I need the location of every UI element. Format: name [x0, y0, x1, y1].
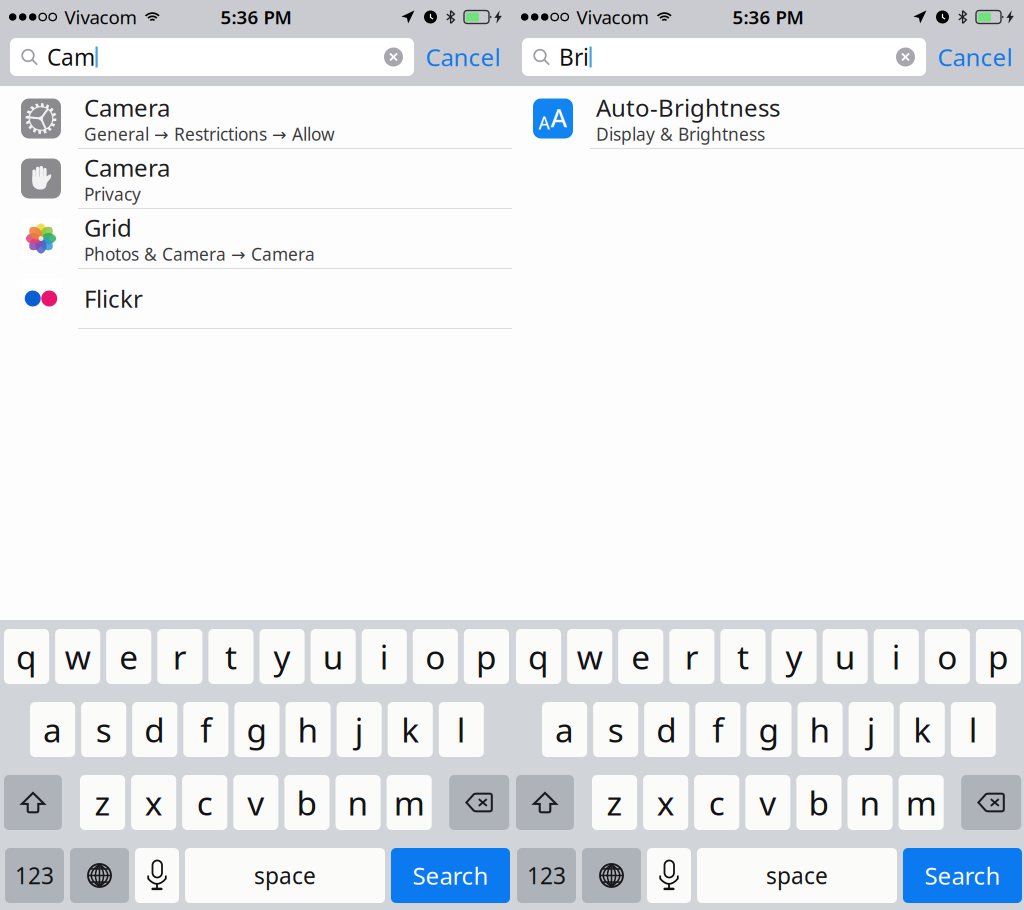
button[interactable]: m — [899, 775, 944, 830]
button[interactable]: Shift — [4, 775, 62, 830]
button[interactable]: b — [284, 775, 329, 830]
staticText: e — [631, 634, 650, 679]
button[interactable]: d — [644, 702, 689, 757]
staticText: j — [867, 707, 876, 752]
button[interactable]: Grid — [0, 209, 512, 269]
button[interactable]: v — [233, 775, 278, 830]
button[interactable]: l — [439, 702, 484, 757]
staticText: 5:36 PM — [220, 5, 291, 29]
staticText: Search — [924, 860, 1000, 891]
button[interactable]: f — [183, 702, 228, 757]
button[interactable]: q — [4, 629, 49, 684]
button[interactable]: Delete — [449, 775, 509, 830]
button[interactable]: j — [337, 702, 382, 757]
button[interactable]: c — [694, 775, 739, 830]
button[interactable]: 123 — [5, 848, 64, 903]
button[interactable]: Next keyboard — [582, 848, 641, 903]
button[interactable]: Shift — [516, 775, 574, 830]
button[interactable]: o — [413, 629, 458, 684]
button[interactable]: k — [388, 702, 433, 757]
button[interactable]: Clear text — [885, 39, 926, 75]
button[interactable]: y — [259, 629, 305, 684]
button[interactable]: p — [464, 629, 509, 684]
staticText: e — [119, 634, 138, 679]
staticText: s — [608, 707, 624, 752]
staticText: i — [892, 634, 901, 679]
button[interactable]: e — [106, 629, 151, 684]
staticText: Auto-Brightness — [596, 92, 780, 123]
button[interactable]: b — [796, 775, 841, 830]
button[interactable]: s — [81, 702, 126, 757]
button[interactable]: l — [951, 702, 996, 757]
staticText: j — [355, 707, 364, 752]
button[interactable]: x — [643, 775, 688, 830]
button[interactable]: n — [335, 775, 381, 830]
button[interactable]: Camera — [0, 89, 512, 149]
button[interactable]: c — [182, 775, 227, 830]
button[interactable]: w — [55, 629, 100, 684]
button[interactable]: Cancel — [414, 37, 512, 77]
button[interactable]: i — [362, 629, 407, 684]
button[interactable]: Flickr — [0, 269, 512, 329]
button[interactable]: t — [720, 629, 765, 684]
staticText: m — [394, 780, 425, 825]
button[interactable]: w — [567, 629, 612, 684]
staticText: f — [712, 707, 723, 752]
button[interactable]: r — [157, 629, 202, 684]
staticText: r — [685, 634, 699, 679]
button[interactable]: f — [695, 702, 740, 757]
button[interactable]: o — [925, 629, 970, 684]
staticText: n — [859, 780, 880, 825]
button[interactable]: k — [900, 702, 945, 757]
button[interactable]: a — [30, 702, 75, 757]
staticText: A — [538, 111, 549, 134]
staticText: p — [988, 634, 1009, 679]
button[interactable]: space — [185, 848, 385, 903]
button[interactable]: Cancel — [926, 37, 1024, 77]
button[interactable]: Dictation — [647, 848, 691, 903]
button[interactable]: z — [592, 775, 637, 830]
button[interactable]: e — [618, 629, 663, 684]
staticText: x — [657, 780, 675, 825]
staticText: m — [906, 780, 937, 825]
staticText: A — [550, 101, 567, 134]
button[interactable]: y — [771, 629, 817, 684]
staticText: Flickr — [84, 283, 143, 314]
staticText: h — [298, 707, 319, 752]
button[interactable]: g — [746, 702, 791, 757]
button[interactable]: x — [131, 775, 176, 830]
button[interactable]: g — [234, 702, 279, 757]
button[interactable]: j — [849, 702, 894, 757]
button[interactable]: r — [669, 629, 714, 684]
button[interactable]: s — [593, 702, 638, 757]
button[interactable]: A — [512, 89, 1024, 149]
staticText: space — [254, 860, 316, 890]
button[interactable]: i — [874, 629, 919, 684]
button[interactable]: z — [80, 775, 125, 830]
button[interactable]: Next keyboard — [70, 848, 129, 903]
button[interactable]: Search — [391, 848, 510, 903]
button[interactable]: 123 — [517, 848, 576, 903]
button[interactable]: space — [697, 848, 897, 903]
staticText: General → Restrictions → Allow — [84, 122, 335, 145]
staticText: Vivacom — [64, 5, 136, 29]
button[interactable]: n — [847, 775, 893, 830]
button[interactable]: u — [311, 629, 356, 684]
button[interactable]: u — [823, 629, 868, 684]
button[interactable]: a — [542, 702, 587, 757]
button[interactable]: Search — [903, 848, 1022, 903]
button[interactable]: h — [797, 702, 843, 757]
button[interactable]: p — [976, 629, 1021, 684]
button[interactable]: q — [516, 629, 561, 684]
button[interactable]: h — [285, 702, 331, 757]
button[interactable]: v — [745, 775, 790, 830]
button[interactable]: Dictation — [135, 848, 179, 903]
button[interactable]: Camera — [0, 149, 512, 209]
button[interactable]: Clear text — [373, 39, 414, 75]
button[interactable]: Delete — [961, 775, 1021, 830]
staticText: Cam — [47, 42, 95, 72]
button[interactable]: t — [208, 629, 253, 684]
staticText: z — [606, 780, 622, 825]
button[interactable]: d — [132, 702, 177, 757]
button[interactable]: m — [387, 775, 432, 830]
